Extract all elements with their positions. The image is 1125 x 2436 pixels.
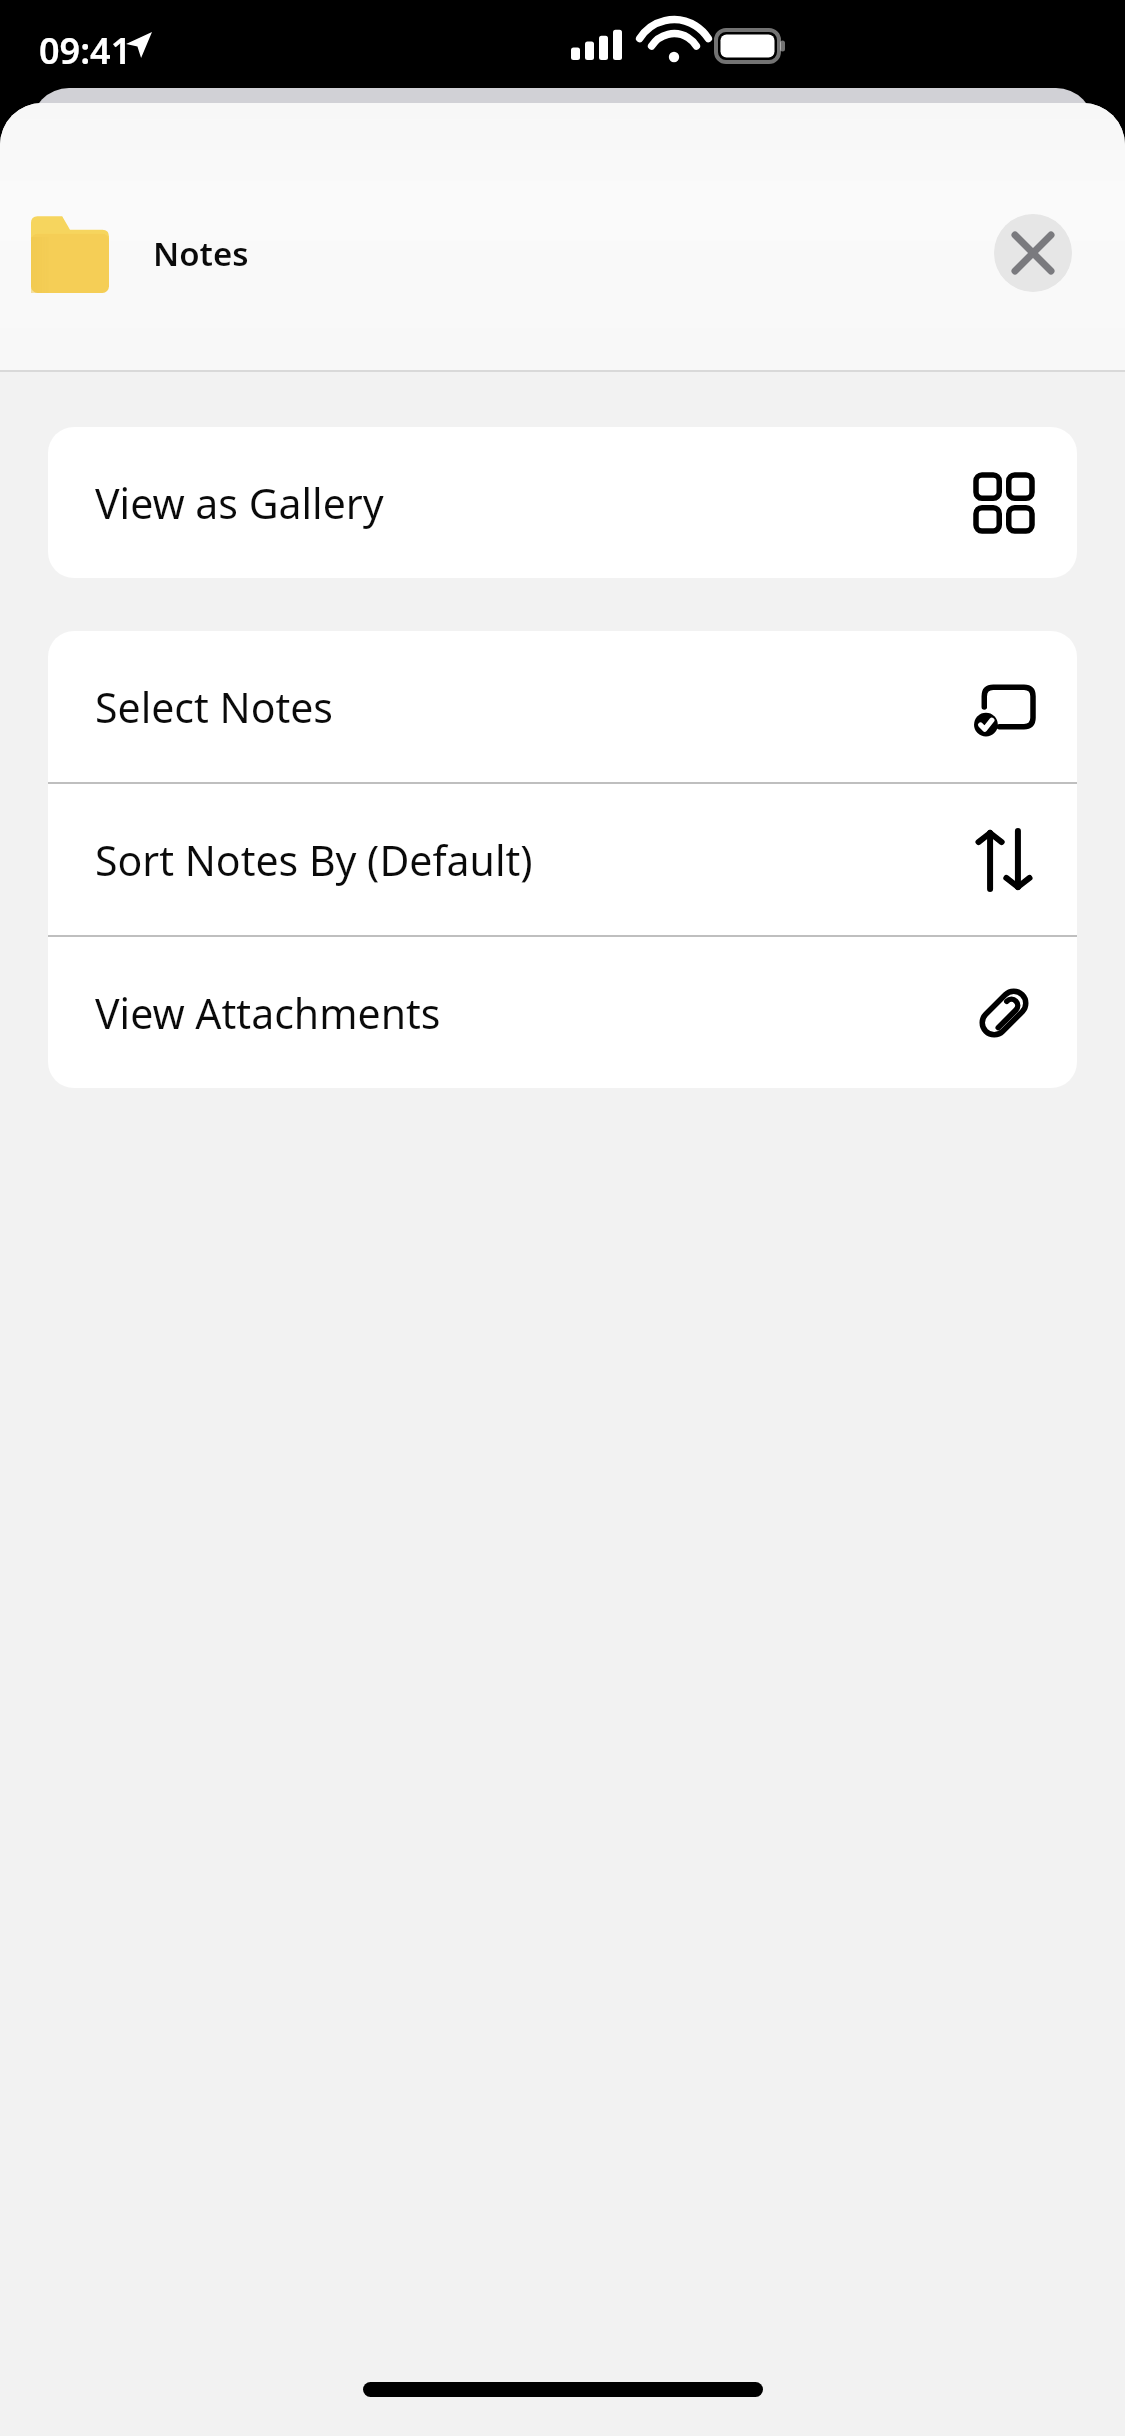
staticText: View as Gallery [95, 475, 384, 531]
button[interactable]: Sort Notes By (Default) [48, 784, 1077, 935]
button[interactable]: Close [994, 214, 1072, 292]
staticText: Sort Notes By (Default) [95, 832, 533, 888]
button[interactable]: View as Gallery [48, 427, 1077, 578]
staticText: Select Notes [95, 679, 334, 735]
staticText: 09:41 [39, 26, 132, 75]
button[interactable]: Select Notes [48, 631, 1077, 782]
staticText: Notes [153, 231, 249, 276]
staticText: View Attachments [95, 985, 441, 1041]
button[interactable]: View Attachments [48, 937, 1077, 1088]
